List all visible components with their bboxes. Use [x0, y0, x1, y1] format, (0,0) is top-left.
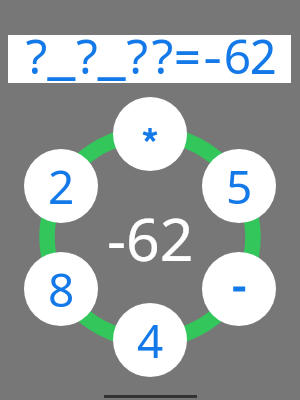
staticText: 8: [48, 258, 75, 321]
button[interactable]: Token -: [202, 252, 276, 326]
button[interactable]: [8, 35, 291, 83]
button[interactable]: Token *: [113, 97, 187, 171]
staticText: ?_?_??=-62: [22, 24, 274, 88]
button[interactable]: Token 5: [202, 149, 276, 223]
staticText: 5: [226, 155, 253, 218]
button[interactable]: Token 4: [113, 303, 187, 377]
staticText: -62: [107, 198, 194, 268]
button[interactable]: Token 2: [24, 149, 98, 223]
staticText: 2: [48, 155, 75, 218]
staticText: 4: [137, 309, 164, 372]
button[interactable]: Token 8: [24, 252, 98, 326]
